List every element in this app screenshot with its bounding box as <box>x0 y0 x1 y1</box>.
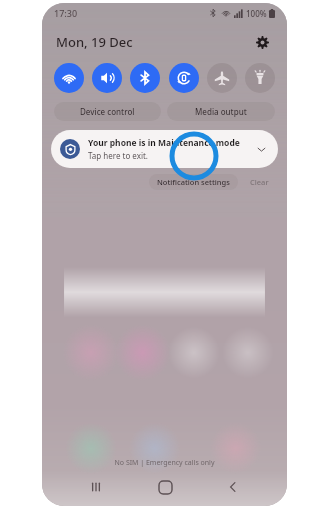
button[interactable]: Sound <box>92 63 122 93</box>
button[interactable]: Media output <box>167 102 275 121</box>
button[interactable]: Recents <box>81 476 111 498</box>
button[interactable]: Airplane mode <box>207 63 237 93</box>
staticText: Your phone is in Maintenance mode <box>88 137 240 149</box>
button[interactable]: Clear <box>246 174 273 190</box>
button[interactable]: Your phone is in Maintenance mode <box>51 130 278 168</box>
button[interactable]: Bluetooth <box>130 63 160 93</box>
staticText: No SIM | Emergency calls only <box>42 458 287 468</box>
button[interactable]: Wi-Fi <box>54 63 84 93</box>
staticText: Media output <box>195 106 247 117</box>
button[interactable]: Settings <box>251 31 273 53</box>
staticText: Device control <box>80 106 135 117</box>
button[interactable]: Expand <box>253 141 269 157</box>
staticText: Mon, 19 Dec <box>56 33 133 51</box>
staticText: Notification settings <box>157 177 230 187</box>
button[interactable]: Home <box>150 476 180 498</box>
button[interactable]: Device control <box>54 102 161 121</box>
staticText: 100% <box>246 8 267 19</box>
button[interactable]: Auto rotate <box>169 63 199 93</box>
button[interactable]: Notification settings <box>149 174 238 190</box>
staticText: Clear <box>250 177 269 187</box>
button[interactable]: Back <box>218 476 248 498</box>
button[interactable]: Flashlight <box>245 63 275 93</box>
staticText: 17:30 <box>54 7 78 19</box>
staticText: Tap here to exit. <box>88 150 148 161</box>
